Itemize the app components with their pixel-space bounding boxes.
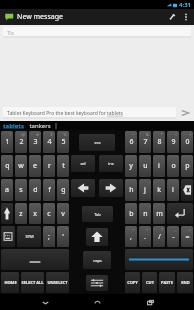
- button[interactable]: h: [125, 179, 137, 201]
- button[interactable]: =: [181, 226, 193, 247]
- button[interactable]: j: [139, 179, 151, 201]
- button[interactable]: Attach: [166, 11, 178, 23]
- staticText: /: [158, 232, 161, 242]
- button[interactable]: f: [43, 179, 55, 201]
- button[interactable]: t: [57, 155, 69, 177]
- button[interactable]: p: [181, 155, 193, 177]
- button[interactable]: PASTE: [159, 272, 175, 293]
- button[interactable]: ins: [99, 155, 123, 172]
- button[interactable]: /: [153, 226, 165, 247]
- button[interactable]: To: [3, 27, 191, 38]
- staticText: v: [61, 209, 65, 219]
- button[interactable]: HOME: [1, 272, 19, 293]
- button[interactable]: SYM: [17, 226, 41, 247]
- button[interactable]: -: [167, 226, 179, 247]
- button[interactable]: Back: [37, 294, 53, 310]
- button[interactable]: Tab: [82, 206, 113, 222]
- staticText: ins: [108, 161, 114, 166]
- button[interactable]: Home: [89, 294, 105, 310]
- button[interactable]: k: [153, 179, 165, 201]
- button[interactable]: tablets: [3, 122, 24, 130]
- button[interactable]: 9: [167, 131, 179, 153]
- button[interactable]: v: [57, 203, 69, 224]
- staticText: .: [144, 232, 146, 242]
- button[interactable]: ': [57, 226, 69, 247]
- button[interactable]: Recents: [142, 294, 158, 310]
- staticText: tablets: [3, 122, 24, 130]
- staticText: =: [185, 232, 190, 242]
- staticText: z: [19, 209, 23, 219]
- staticText: 0: [185, 137, 190, 147]
- button[interactable]: key: [1, 203, 13, 224]
- button[interactable]: key: [1, 226, 15, 247]
- button[interactable]: r: [43, 155, 55, 177]
- button[interactable]: 6: [125, 131, 137, 153]
- staticText: New message: [17, 12, 63, 22]
- button[interactable]: z: [15, 203, 27, 224]
- button[interactable]: a: [1, 179, 13, 201]
- button[interactable]: tankers: [29, 122, 51, 130]
- button[interactable]: y: [125, 155, 137, 177]
- button[interactable]: o: [167, 155, 179, 177]
- button[interactable]: key: [125, 249, 193, 270]
- staticText: 8: [157, 137, 162, 147]
- button[interactable]: 7: [139, 131, 151, 153]
- staticText: g: [61, 185, 66, 195]
- button[interactable]: sel: [71, 155, 95, 172]
- staticText: 7: [143, 137, 148, 147]
- staticText: %: [63, 132, 67, 137]
- button[interactable]: Send: [179, 107, 191, 119]
- staticText: o: [171, 161, 176, 171]
- button[interactable]: key: [86, 275, 108, 291]
- button[interactable]: key: [167, 203, 193, 224]
- button[interactable]: q: [1, 155, 13, 177]
- button[interactable]: c: [43, 203, 55, 224]
- button[interactable]: u: [139, 155, 151, 177]
- button[interactable]: 3: [29, 131, 41, 153]
- button[interactable]: caps: [83, 251, 111, 269]
- button[interactable]: e: [29, 155, 41, 177]
- button[interactable]: 5: [57, 131, 69, 153]
- button[interactable]: key: [86, 228, 108, 246]
- staticText: _: [175, 227, 177, 232]
- button[interactable]: x: [29, 203, 41, 224]
- staticText: 6: [129, 137, 134, 147]
- button[interactable]: l: [167, 179, 179, 201]
- button[interactable]: Messaging: [4, 12, 14, 22]
- button[interactable]: 4: [43, 131, 55, 153]
- button[interactable]: b: [125, 203, 137, 224]
- button[interactable]: UNSELECT: [46, 272, 69, 293]
- button[interactable]: g: [57, 179, 69, 201]
- button[interactable]: key: [1, 249, 69, 270]
- staticText: 4:31: [179, 1, 191, 9]
- staticText: k: [157, 185, 161, 195]
- button[interactable]: ,: [125, 226, 137, 247]
- button[interactable]: END: [177, 272, 193, 293]
- button[interactable]: 2: [15, 131, 27, 153]
- staticText: tankers: [29, 122, 51, 130]
- button[interactable]: More options: [182, 9, 190, 25]
- button[interactable]: CUT: [142, 272, 157, 293]
- button[interactable]: m: [153, 203, 165, 224]
- button[interactable]: key: [181, 179, 193, 201]
- button[interactable]: SELECT ALL: [21, 272, 44, 293]
- staticText: t: [62, 161, 65, 171]
- staticText: p: [185, 161, 190, 171]
- button[interactable]: ;: [43, 226, 55, 247]
- button[interactable]: 8: [153, 131, 165, 153]
- button[interactable]: 1: [1, 131, 13, 153]
- staticText: To: [7, 29, 14, 37]
- button[interactable]: w: [15, 155, 27, 177]
- button[interactable]: i: [153, 155, 165, 177]
- button[interactable]: .: [139, 226, 151, 247]
- button[interactable]: key: [99, 179, 123, 197]
- button[interactable]: s: [15, 179, 27, 201]
- button[interactable]: 0: [181, 131, 193, 153]
- button[interactable]: d: [29, 179, 41, 201]
- button[interactable]: esc: [79, 134, 115, 151]
- staticText: END: [181, 280, 190, 285]
- button[interactable]: key: [71, 179, 95, 197]
- button[interactable]: Tablet Keyboard Pro the best keyboard fo…: [3, 107, 176, 119]
- button[interactable]: COPY: [125, 272, 140, 293]
- button[interactable]: n: [139, 203, 151, 224]
